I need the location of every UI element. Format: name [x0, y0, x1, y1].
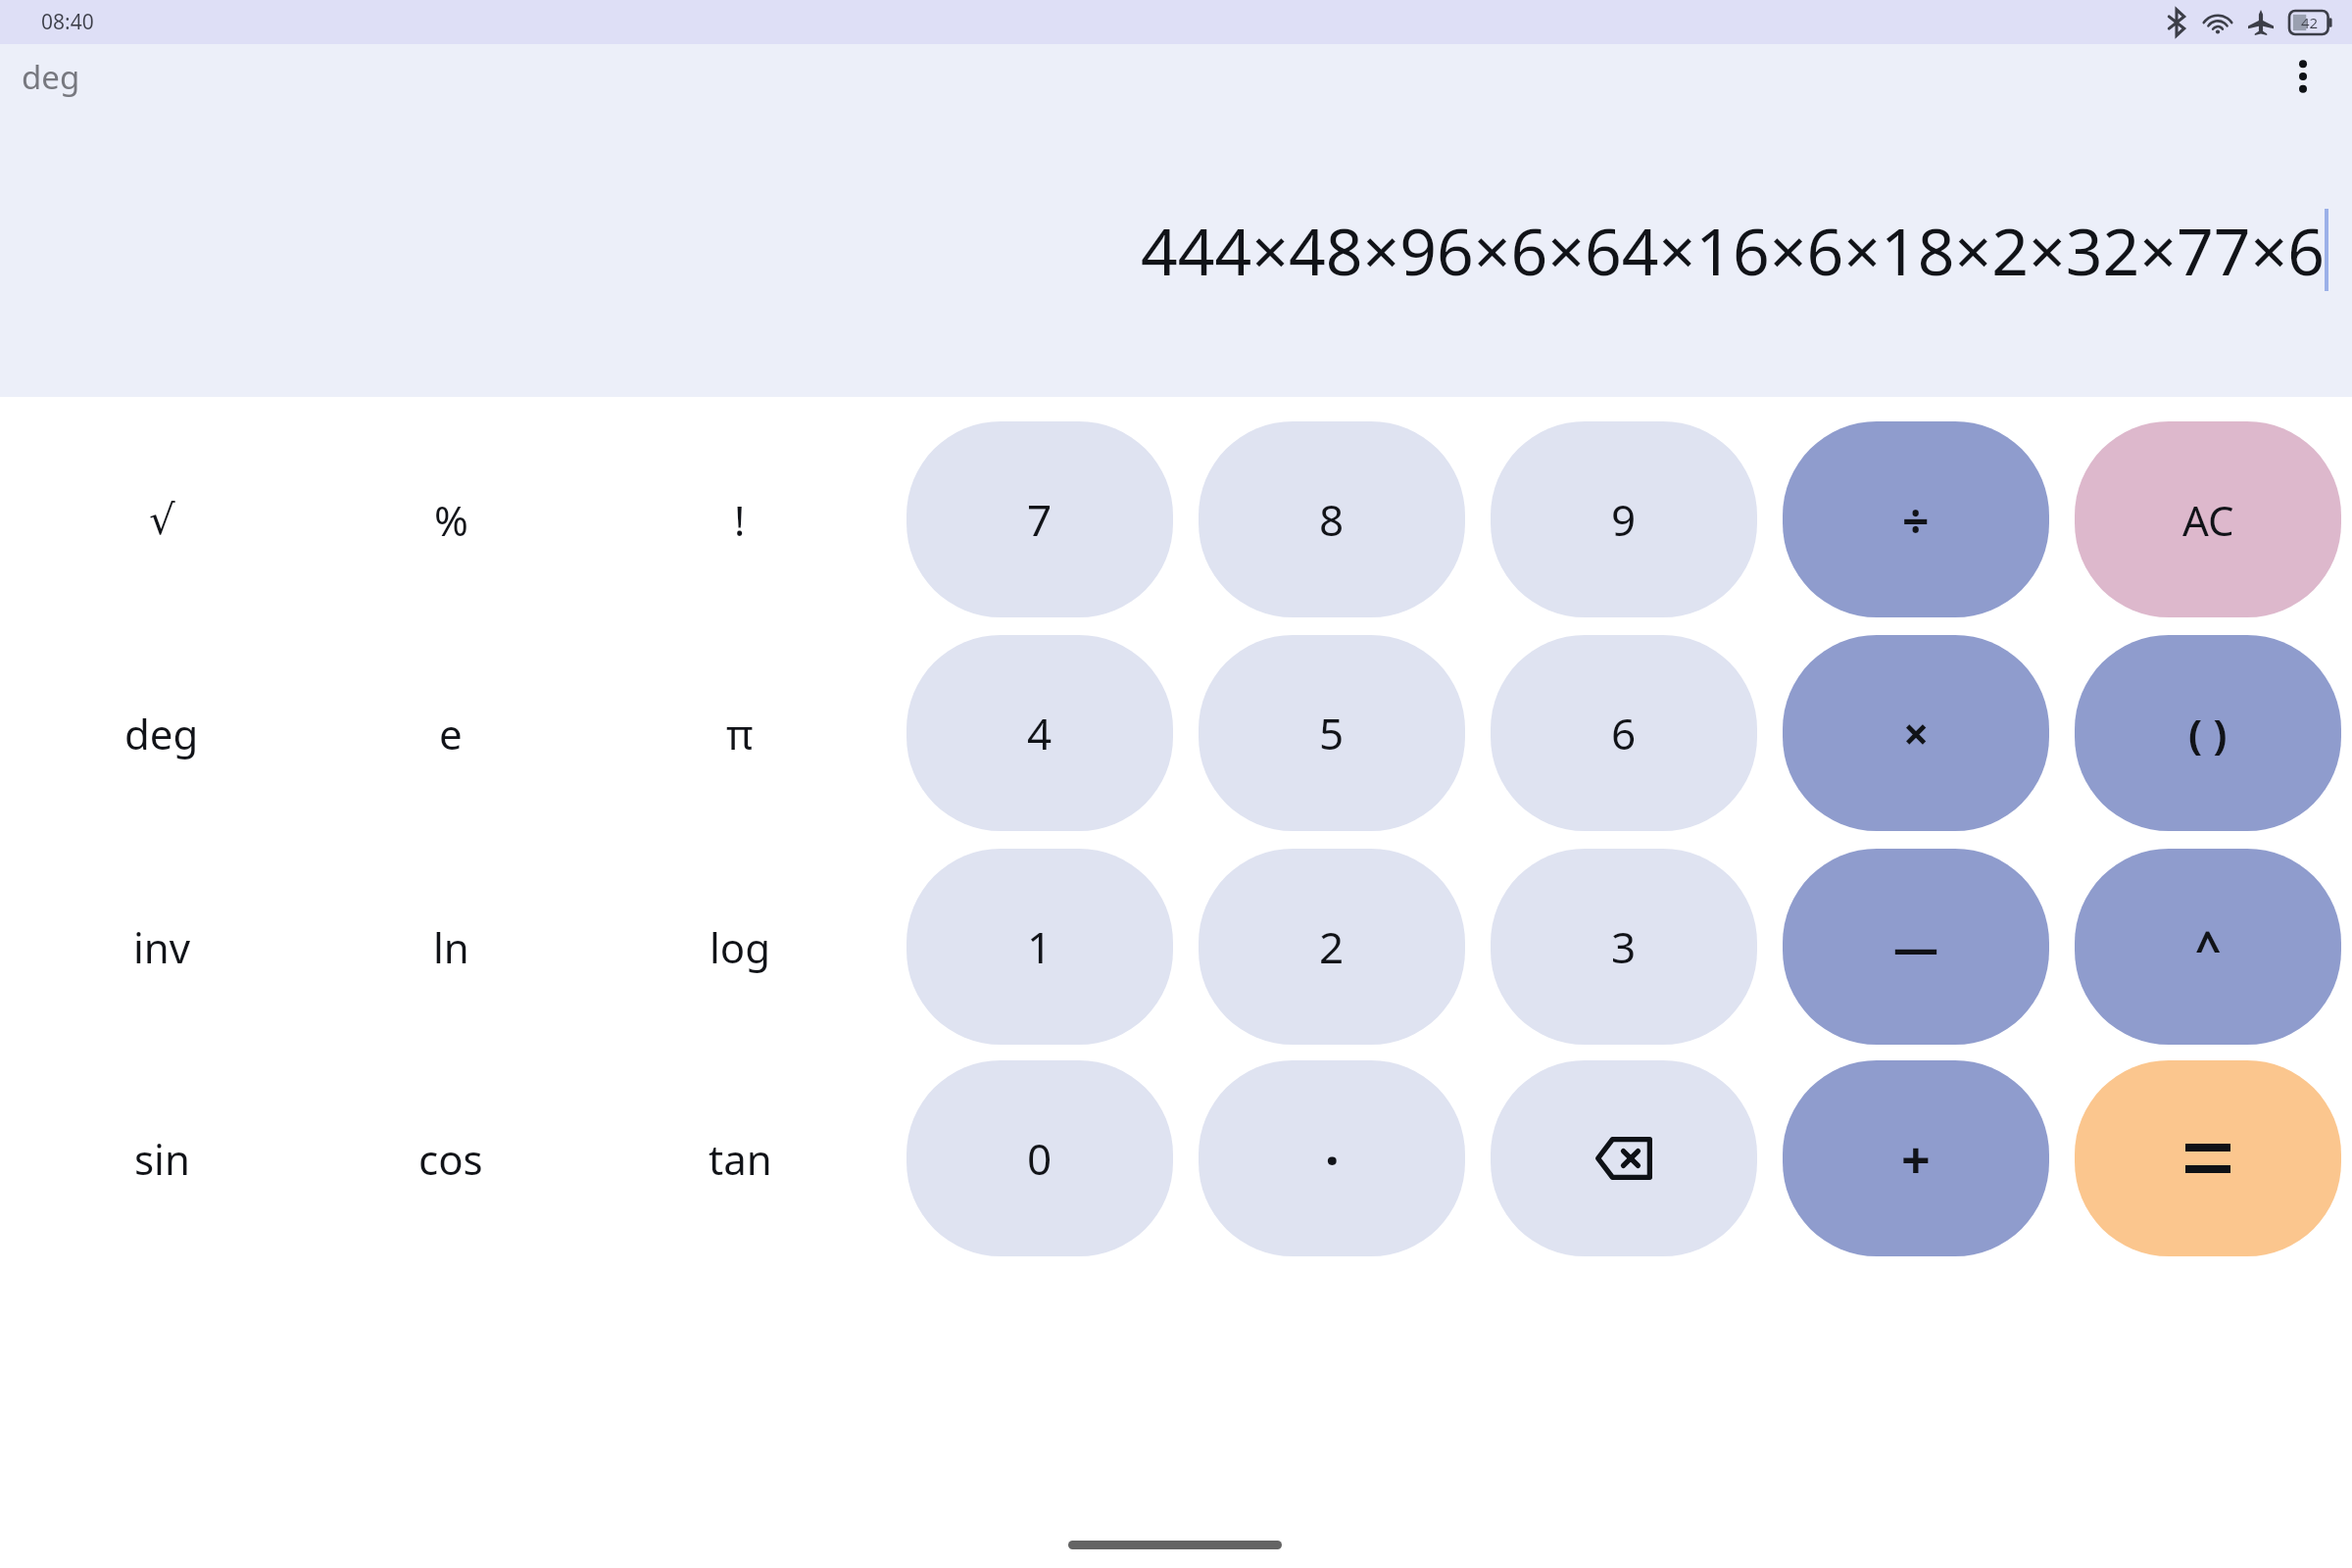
button[interactable]: 2: [1199, 849, 1465, 1045]
button[interactable]: More options: [2268, 41, 2338, 112]
button[interactable]: deg: [8, 47, 94, 107]
button[interactable]: AC: [2075, 421, 2341, 617]
button[interactable]: +: [1783, 1060, 2049, 1256]
staticText: 4: [1027, 704, 1053, 762]
button[interactable]: ·: [1199, 1060, 1465, 1256]
staticText: 6: [1611, 704, 1637, 762]
button[interactable]: 0: [906, 1060, 1173, 1256]
button[interactable]: deg: [59, 662, 265, 804]
staticText: 08:40: [41, 8, 94, 36]
staticText: 2: [1319, 917, 1345, 976]
button[interactable]: ÷: [1783, 421, 2049, 617]
button[interactable]: 7: [906, 421, 1173, 617]
button[interactable]: sin: [59, 1088, 265, 1229]
button[interactable]: 3: [1491, 849, 1757, 1045]
button[interactable]: log: [637, 876, 843, 1017]
button[interactable]: Backspace: [1491, 1060, 1757, 1256]
button[interactable]: ln: [348, 876, 554, 1017]
button[interactable]: √: [59, 449, 265, 590]
button[interactable]: 4: [906, 635, 1173, 831]
staticText: 444×48×96×6×64×16×6×18×2×32×77×6: [1140, 206, 2325, 294]
staticText: 0: [1027, 1129, 1053, 1188]
staticText: deg: [22, 55, 80, 99]
button[interactable]: !: [637, 449, 843, 590]
staticText: 7: [1027, 490, 1053, 549]
button[interactable]: 8: [1199, 421, 1465, 617]
staticText: ln: [433, 919, 469, 975]
staticText: sin: [134, 1131, 190, 1187]
staticText: 8: [1319, 490, 1345, 549]
button[interactable]: e: [348, 662, 554, 804]
staticText: 42: [2301, 13, 2319, 32]
staticText: AC: [2182, 492, 2234, 548]
staticText: —: [1893, 916, 1938, 978]
staticText: 3: [1611, 917, 1637, 976]
button[interactable]: π: [637, 662, 843, 804]
button[interactable]: inv: [59, 876, 265, 1017]
staticText: ·: [1325, 1124, 1340, 1194]
button[interactable]: ( ): [2075, 635, 2341, 831]
button[interactable]: ×: [1783, 635, 2049, 831]
staticText: 5: [1319, 704, 1345, 762]
staticText: deg: [124, 706, 199, 761]
staticText: inv: [133, 919, 191, 975]
staticText: 1: [1027, 917, 1053, 976]
staticText: e: [439, 706, 463, 761]
button[interactable]: tan: [637, 1088, 843, 1229]
button[interactable]: Equals: [2075, 1060, 2341, 1256]
staticText: cos: [418, 1131, 483, 1187]
button[interactable]: 6: [1491, 635, 1757, 831]
button[interactable]: 9: [1491, 421, 1757, 617]
staticText: ^: [2195, 916, 2222, 978]
staticText: log: [710, 919, 771, 975]
button[interactable]: %: [348, 449, 554, 590]
staticText: ×: [1903, 703, 1930, 764]
staticText: √: [149, 496, 175, 544]
staticText: +: [1901, 1124, 1931, 1194]
staticText: %: [434, 492, 468, 548]
button[interactable]: ^: [2075, 849, 2341, 1045]
button[interactable]: 1: [906, 849, 1173, 1045]
button[interactable]: 5: [1199, 635, 1465, 831]
staticText: !: [734, 492, 746, 548]
staticText: 9: [1611, 490, 1637, 549]
staticText: tan: [709, 1131, 772, 1187]
button[interactable]: —: [1783, 849, 2049, 1045]
staticText: ÷: [1902, 488, 1930, 552]
button[interactable]: cos: [348, 1088, 554, 1229]
staticText: ( ): [2188, 706, 2228, 761]
staticText: π: [726, 706, 754, 761]
